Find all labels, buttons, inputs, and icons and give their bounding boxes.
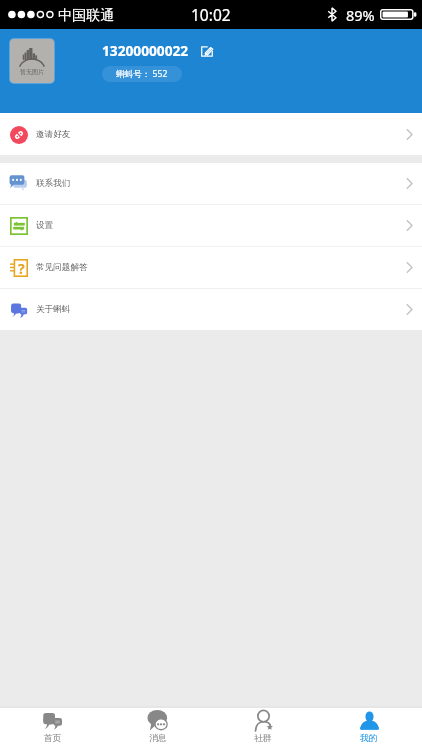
staticText: 蝌蚪号： 552 (116, 68, 168, 80)
staticText: 暂无图片 (20, 68, 44, 76)
button[interactable]: 社群 (210, 708, 316, 744)
staticText: 13200000022 (102, 41, 189, 60)
button[interactable]: 设置 (0, 205, 422, 246)
staticText: 常见问题解答 (36, 262, 88, 273)
button[interactable]: 联系我们 (0, 163, 422, 204)
button[interactable]: 首页 (0, 708, 105, 744)
staticText: ? (18, 259, 25, 276)
button[interactable]: 邀请好友 (0, 113, 422, 155)
button[interactable]: 消息 (105, 708, 210, 744)
button[interactable]: Avatar (10, 39, 54, 83)
staticText: 联系我们 (36, 178, 71, 189)
staticText: 消息 (149, 733, 167, 744)
staticText: 社群 (254, 733, 272, 744)
staticText: 关于蝌蚪 (36, 304, 71, 315)
staticText: 89% (346, 5, 375, 25)
staticText: 首页 (44, 733, 62, 744)
button[interactable]: Edit nickname (200, 44, 214, 58)
staticText: 邀请好友 (36, 129, 71, 140)
button[interactable]: 关于蝌蚪 (0, 289, 422, 330)
staticText: 设置 (36, 220, 54, 231)
staticText: 我的 (360, 733, 378, 744)
button[interactable]: ? (0, 247, 422, 288)
button[interactable]: 我的 (316, 708, 422, 744)
staticText: 中国联通 (58, 6, 115, 24)
staticText: 10:02 (191, 4, 231, 25)
